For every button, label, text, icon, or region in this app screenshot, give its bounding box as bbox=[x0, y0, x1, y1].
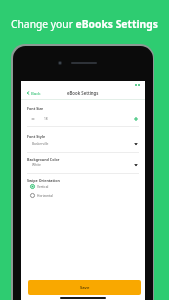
staticText: Horizontal bbox=[37, 194, 53, 198]
staticText: Vertical bbox=[37, 185, 49, 189]
button[interactable]: More options bbox=[135, 84, 140, 86]
staticText: Baskerville bbox=[32, 142, 49, 146]
staticText: 18 bbox=[44, 117, 48, 121]
button[interactable]: Decrease font size bbox=[27, 113, 38, 124]
staticText: White bbox=[32, 163, 41, 167]
staticText: Back bbox=[31, 90, 41, 96]
button[interactable]: Save bbox=[28, 280, 141, 295]
button[interactable]: Horizontal bbox=[21, 192, 145, 199]
button[interactable]: Increase font size bbox=[130, 113, 141, 124]
button[interactable]: Back bbox=[24, 89, 43, 97]
button[interactable]: Vertical bbox=[21, 183, 145, 190]
staticText: Swipe Orientation bbox=[27, 178, 60, 183]
button[interactable]: White bbox=[21, 162, 145, 168]
staticText: Background Color bbox=[27, 157, 60, 162]
staticText: Change your eBooks Settings bbox=[11, 17, 158, 31]
staticText: Font Size bbox=[27, 106, 44, 111]
staticText: Save bbox=[80, 285, 90, 290]
button[interactable]: Baskerville bbox=[21, 141, 145, 147]
staticText: eBook Settings bbox=[67, 90, 99, 96]
staticText: Font Style bbox=[27, 134, 46, 139]
